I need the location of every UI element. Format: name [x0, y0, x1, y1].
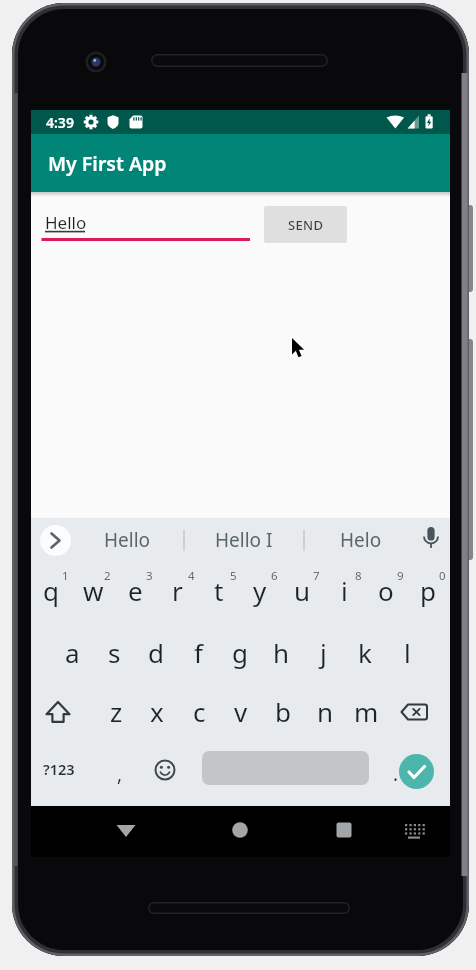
staticText: Helo: [340, 527, 382, 553]
button[interactable]: [324, 811, 364, 851]
staticText: 4:39: [46, 113, 74, 132]
staticText: t: [214, 573, 224, 608]
staticText: i: [341, 573, 348, 608]
button[interactable]: v: [171, 687, 311, 735]
button[interactable]: k: [295, 628, 435, 676]
staticText: r: [172, 573, 183, 608]
staticText: Hello: [104, 527, 151, 553]
staticText: u: [294, 573, 311, 608]
staticText: z: [110, 694, 123, 729]
button[interactable]: SEND: [264, 206, 347, 243]
button[interactable]: j: [253, 628, 393, 676]
button[interactable]: q: [0, 566, 121, 614]
staticText: 1: [62, 568, 69, 584]
button[interactable]: n: [255, 687, 395, 735]
staticText: h: [273, 635, 290, 670]
staticText: 4: [188, 568, 195, 584]
staticText: .: [393, 761, 399, 787]
button[interactable]: t: [149, 566, 289, 614]
staticText: o: [378, 573, 394, 608]
staticText: ,: [117, 761, 123, 787]
button[interactable]: [202, 751, 369, 785]
button[interactable]: .: [326, 750, 466, 798]
staticText: d: [148, 635, 164, 670]
button[interactable]: e: [65, 566, 205, 614]
staticText: 7: [313, 568, 320, 584]
staticText: n: [317, 694, 334, 729]
staticText: a: [65, 635, 80, 670]
button[interactable]: [394, 811, 434, 851]
staticText: g: [232, 635, 248, 670]
staticText: b: [275, 694, 291, 729]
staticText: 2: [104, 568, 111, 584]
button[interactable]: [399, 754, 434, 789]
staticText: v: [234, 694, 248, 729]
button[interactable]: [106, 811, 146, 851]
staticText: j: [320, 635, 327, 670]
button[interactable]: ?123: [0, 745, 129, 793]
staticText: m: [354, 694, 379, 729]
button[interactable]: [40, 525, 71, 556]
button[interactable]: [220, 811, 260, 851]
button[interactable]: g: [170, 628, 310, 676]
staticText: w: [83, 573, 104, 608]
button[interactable]: m: [296, 687, 436, 735]
button[interactable]: x: [87, 687, 227, 735]
staticText: My First App: [48, 150, 167, 177]
staticText: 5: [230, 568, 237, 584]
button[interactable]: h: [211, 628, 351, 676]
staticText: s: [108, 635, 121, 670]
staticText: ?123: [43, 759, 75, 779]
staticText: 3: [146, 568, 153, 584]
staticText: x: [150, 694, 164, 729]
staticText: 9: [397, 568, 404, 584]
staticText: f: [194, 635, 203, 670]
staticText: p: [420, 573, 436, 608]
button[interactable]: r: [107, 566, 247, 614]
button[interactable]: ,: [50, 750, 190, 798]
button[interactable]: Hello: [57, 516, 197, 564]
staticText: y: [253, 573, 267, 608]
button[interactable]: Helo: [291, 516, 431, 564]
button[interactable]: a: [2, 628, 142, 676]
button[interactable]: y: [190, 566, 330, 614]
button[interactable]: u: [232, 566, 372, 614]
staticText: e: [128, 573, 143, 608]
button[interactable]: z: [46, 687, 186, 735]
button[interactable]: l: [337, 628, 476, 676]
staticText: Hello I: [215, 527, 273, 553]
staticText: q: [43, 573, 59, 608]
button[interactable]: b: [213, 687, 353, 735]
staticText: k: [358, 635, 372, 670]
button[interactable]: w: [23, 566, 163, 614]
button[interactable]: o: [316, 566, 456, 614]
staticText: Hello: [45, 211, 87, 233]
staticText: c: [193, 694, 206, 729]
button[interactable]: Hello I: [174, 516, 314, 564]
staticText: l: [404, 635, 411, 670]
staticText: 8: [355, 568, 362, 584]
button[interactable]: i: [274, 566, 414, 614]
staticText: 6: [271, 568, 278, 584]
staticText: 0: [439, 568, 446, 584]
staticText: SEND: [288, 216, 324, 234]
button[interactable]: d: [86, 628, 226, 676]
button[interactable]: p: [358, 566, 476, 614]
button[interactable]: c: [129, 687, 269, 735]
button[interactable]: s: [44, 628, 184, 676]
button[interactable]: f: [128, 628, 268, 676]
